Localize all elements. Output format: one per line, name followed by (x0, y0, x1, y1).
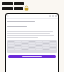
button[interactable] (7, 40, 57, 53)
button[interactable]: AI assist (24, 6, 29, 11)
button[interactable]: Generate email (8, 55, 56, 58)
